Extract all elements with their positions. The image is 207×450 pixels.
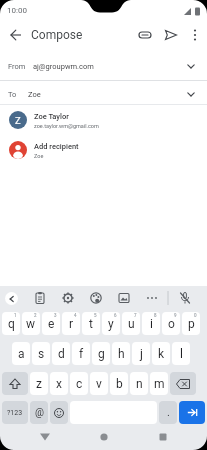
button[interactable]: s [32, 342, 50, 365]
button[interactable]: e [42, 312, 60, 335]
button[interactable]: From [0, 52, 207, 80]
button[interactable]: Z [0, 105, 207, 135]
staticText: Zoe [28, 90, 41, 99]
staticText: Compose [31, 28, 83, 42]
button[interactable]: ?123 [2, 401, 28, 424]
button[interactable]: u [122, 312, 140, 335]
staticText: 8 [154, 313, 157, 318]
staticText: j [140, 347, 143, 361]
button[interactable]: k [152, 342, 170, 365]
button[interactable]: w [22, 312, 40, 335]
button[interactable] [187, 27, 203, 43]
staticText: s [38, 347, 45, 361]
button[interactable]: f [72, 342, 90, 365]
button[interactable] [170, 372, 196, 395]
staticText: zoe.taylor.wm@gmail.com [34, 123, 99, 129]
button[interactable] [92, 425, 116, 449]
staticText: 6 [114, 313, 117, 318]
staticText: 2 [34, 313, 37, 318]
staticText: n [136, 377, 143, 391]
button[interactable]: c [70, 372, 88, 395]
button[interactable]: j [132, 342, 150, 365]
button[interactable]: l [172, 342, 190, 365]
staticText: 4 [74, 313, 77, 318]
staticText: u [128, 317, 135, 331]
button[interactable]: h [112, 342, 130, 365]
button[interactable]: . [159, 401, 177, 424]
button[interactable]: q [2, 312, 20, 335]
staticText: m [154, 377, 165, 391]
button[interactable]: d [52, 342, 70, 365]
button[interactable] [161, 25, 181, 45]
staticText: z [36, 377, 42, 391]
button[interactable] [5, 292, 18, 305]
button[interactable]: p [182, 312, 200, 335]
staticText: Zoe [34, 153, 44, 159]
button[interactable]: y [102, 312, 120, 335]
staticText: 9 [174, 313, 177, 318]
staticText: ?123 [7, 409, 23, 417]
button[interactable]: Add recipient [0, 135, 207, 165]
staticText: o [168, 317, 175, 331]
button[interactable]: t [82, 312, 100, 335]
button[interactable]: @ [30, 401, 48, 424]
staticText: a [18, 347, 25, 361]
staticText: v [96, 377, 102, 391]
button[interactable]: z [30, 372, 48, 395]
button[interactable] [135, 25, 155, 45]
button[interactable]: n [130, 372, 148, 395]
staticText: k [158, 347, 165, 361]
staticText: w [26, 317, 36, 331]
button[interactable]: o [162, 312, 180, 335]
staticText: b [116, 377, 123, 391]
button[interactable] [89, 291, 103, 305]
button[interactable] [151, 425, 175, 449]
button[interactable]: b [110, 372, 128, 395]
button[interactable]: g [92, 342, 110, 365]
button[interactable] [8, 27, 24, 43]
button[interactable]: m [150, 372, 168, 395]
staticText: Add recipient [34, 142, 79, 151]
button[interactable] [33, 425, 57, 449]
staticText: 5 [94, 313, 97, 318]
staticText: To [8, 90, 17, 99]
button[interactable] [2, 372, 28, 395]
staticText: p [188, 317, 195, 331]
staticText: e [48, 317, 55, 331]
staticText: r [69, 317, 74, 331]
staticText: 1 [14, 313, 17, 318]
button[interactable] [61, 291, 75, 305]
staticText: h [118, 347, 125, 361]
staticText: c [76, 377, 83, 391]
button[interactable]: a [12, 342, 30, 365]
staticText: x [56, 377, 62, 391]
staticText: d [58, 347, 65, 361]
staticText: y [108, 317, 114, 331]
button[interactable]: i [142, 312, 160, 335]
button[interactable] [145, 291, 159, 305]
staticText: l [180, 347, 183, 361]
button[interactable]: x [50, 372, 68, 395]
staticText: i [150, 317, 153, 331]
button[interactable] [178, 291, 192, 305]
staticText: aj@groupwm.com [33, 62, 94, 71]
button[interactable]: r [62, 312, 80, 335]
staticText: 10:00 [7, 6, 27, 15]
staticText: @ [35, 407, 44, 419]
staticText: Zoe Taylor [34, 112, 69, 121]
staticText: g [98, 347, 105, 361]
staticText: t [89, 317, 93, 331]
staticText: 7 [134, 313, 137, 318]
staticText: q [8, 317, 15, 331]
button[interactable] [179, 401, 205, 424]
staticText: From [8, 62, 26, 71]
button[interactable] [33, 291, 47, 305]
staticText: Z [15, 115, 21, 126]
staticText: 0 [194, 313, 197, 318]
button[interactable]: v [90, 372, 108, 395]
button[interactable] [50, 401, 68, 424]
staticText: 3 [54, 313, 57, 318]
button[interactable]: To [0, 81, 207, 104]
button[interactable] [117, 291, 131, 305]
